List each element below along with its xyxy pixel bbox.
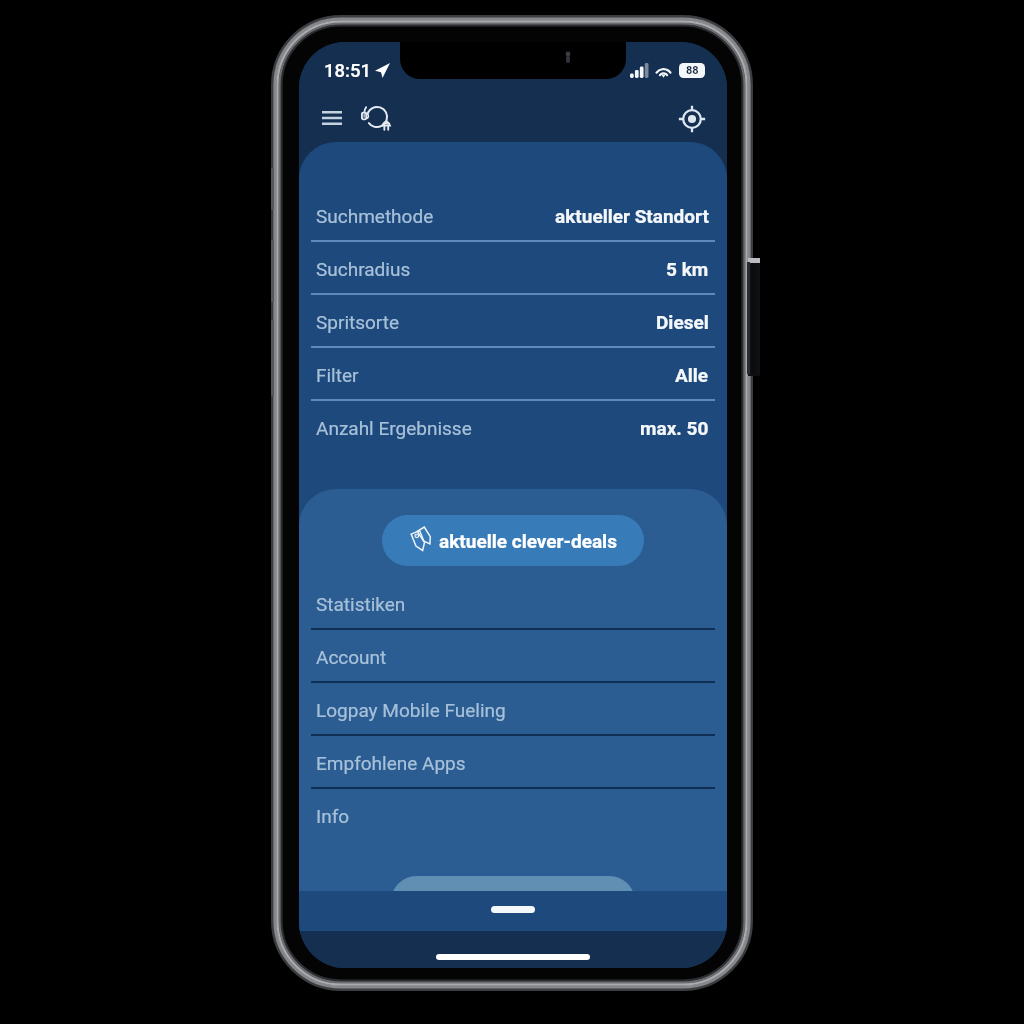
staticText: max. 50: [640, 417, 709, 439]
button[interactable]: Anzahl Ergebnisse: [299, 401, 727, 454]
button[interactable]: Statistiken: [299, 577, 727, 630]
staticText: Statistiken: [316, 593, 406, 615]
button[interactable]: Menu: [312, 98, 352, 138]
staticText: 18:51: [324, 60, 371, 82]
button[interactable]: Info: [299, 789, 727, 842]
staticText: Empfohlene Apps: [316, 752, 466, 774]
staticText: Suchradius: [316, 258, 411, 280]
button[interactable]: aktuelle clever-deals: [382, 515, 644, 566]
button[interactable]: Empfohlene Apps: [299, 736, 727, 789]
staticText: Alle: [675, 364, 709, 386]
staticText: aktueller Standort: [555, 205, 709, 227]
button[interactable]: Account: [299, 630, 727, 683]
button[interactable]: Suchradius: [299, 242, 727, 295]
staticText: Filter: [316, 364, 359, 386]
staticText: Logpay Mobile Fueling: [316, 699, 506, 721]
button[interactable]: Filter: [299, 348, 727, 401]
button[interactable]: My location: [671, 98, 713, 140]
staticText: Account: [316, 646, 387, 668]
staticText: Suchmethode: [316, 205, 434, 227]
button[interactable]: Suchmethode: [299, 189, 727, 242]
button[interactable]: Logpay Mobile Fueling: [299, 683, 727, 736]
button[interactable]: Switch fuel type: [356, 96, 398, 138]
staticText: Spritsorte: [316, 311, 400, 333]
staticText: 88: [686, 64, 699, 77]
staticText: 5 km: [666, 258, 709, 280]
button[interactable]: [391, 876, 635, 891]
staticText: Diesel: [656, 311, 709, 333]
staticText: Anzahl Ergebnisse: [316, 417, 472, 439]
staticText: Info: [316, 805, 350, 827]
staticText: aktuelle clever-deals: [439, 530, 617, 552]
button[interactable]: Spritsorte: [299, 295, 727, 348]
